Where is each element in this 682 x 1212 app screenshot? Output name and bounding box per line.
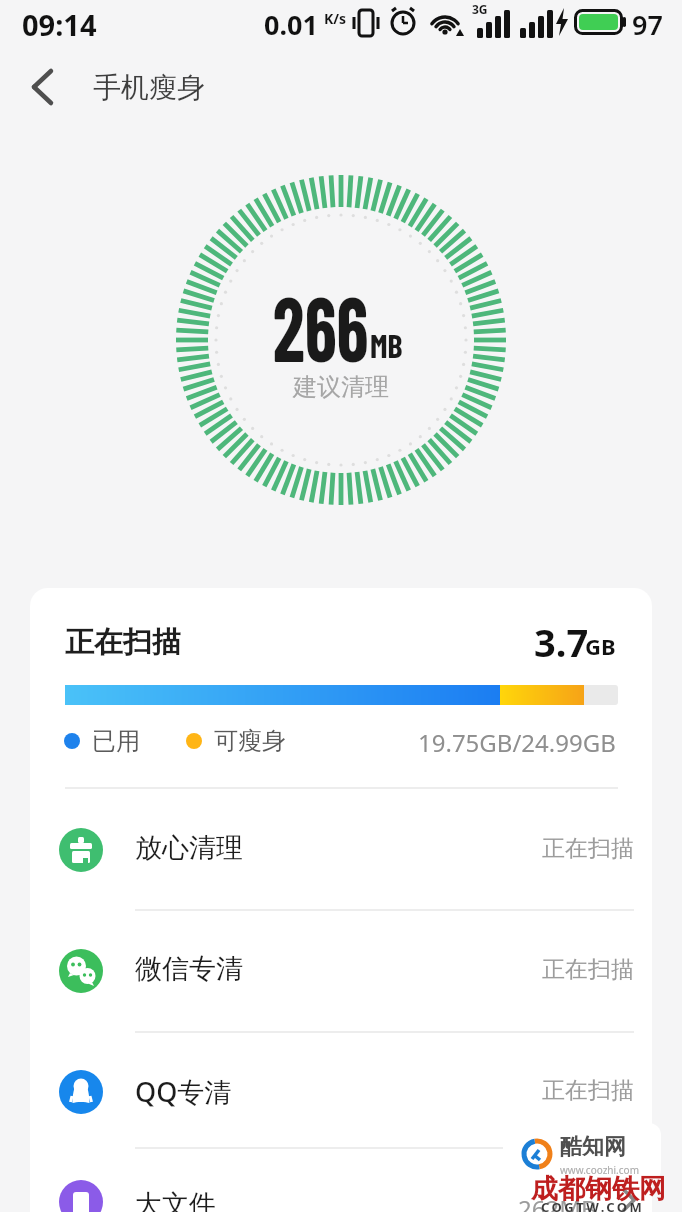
staticText: 正在扫描: [542, 834, 634, 863]
staticText: www.coozhi.com: [560, 1163, 639, 1177]
button[interactable]: [20, 62, 68, 110]
staticText: 酷知网: [560, 1133, 626, 1161]
staticText: 正在扫描: [542, 955, 634, 984]
staticText: 3G: [472, 1, 488, 17]
staticText: 微信专清: [135, 952, 243, 986]
staticText: GB: [585, 631, 616, 661]
staticText: 正在扫描: [65, 624, 181, 661]
staticText: 大文件: [135, 1188, 216, 1212]
staticText: 97: [632, 6, 663, 43]
staticText: 手机瘦身: [93, 70, 205, 105]
staticText: COGTW.COM: [541, 1198, 645, 1212]
staticText: 正在扫描: [542, 1076, 634, 1105]
staticText: QQ专清: [135, 1073, 232, 1110]
staticText: K/s: [324, 9, 347, 28]
staticText: 可瘦身: [214, 726, 286, 756]
staticText: 已用: [92, 726, 140, 756]
button[interactable]: [30, 911, 652, 1032]
staticText: 266: [273, 270, 369, 380]
staticText: 19.75GB/24.99GB: [418, 726, 616, 759]
staticText: 建议清理: [293, 372, 389, 402]
staticText: MB: [370, 326, 403, 364]
staticText: 0.01: [264, 6, 318, 43]
staticText: 3.7: [534, 616, 589, 668]
staticText: 成都钢铁网: [531, 1172, 666, 1206]
button[interactable]: [30, 790, 652, 911]
button[interactable]: [30, 1032, 652, 1153]
staticText: 放心清理: [135, 831, 243, 865]
staticText: 262MB: [518, 1192, 597, 1212]
staticText: 09:14: [22, 5, 97, 44]
